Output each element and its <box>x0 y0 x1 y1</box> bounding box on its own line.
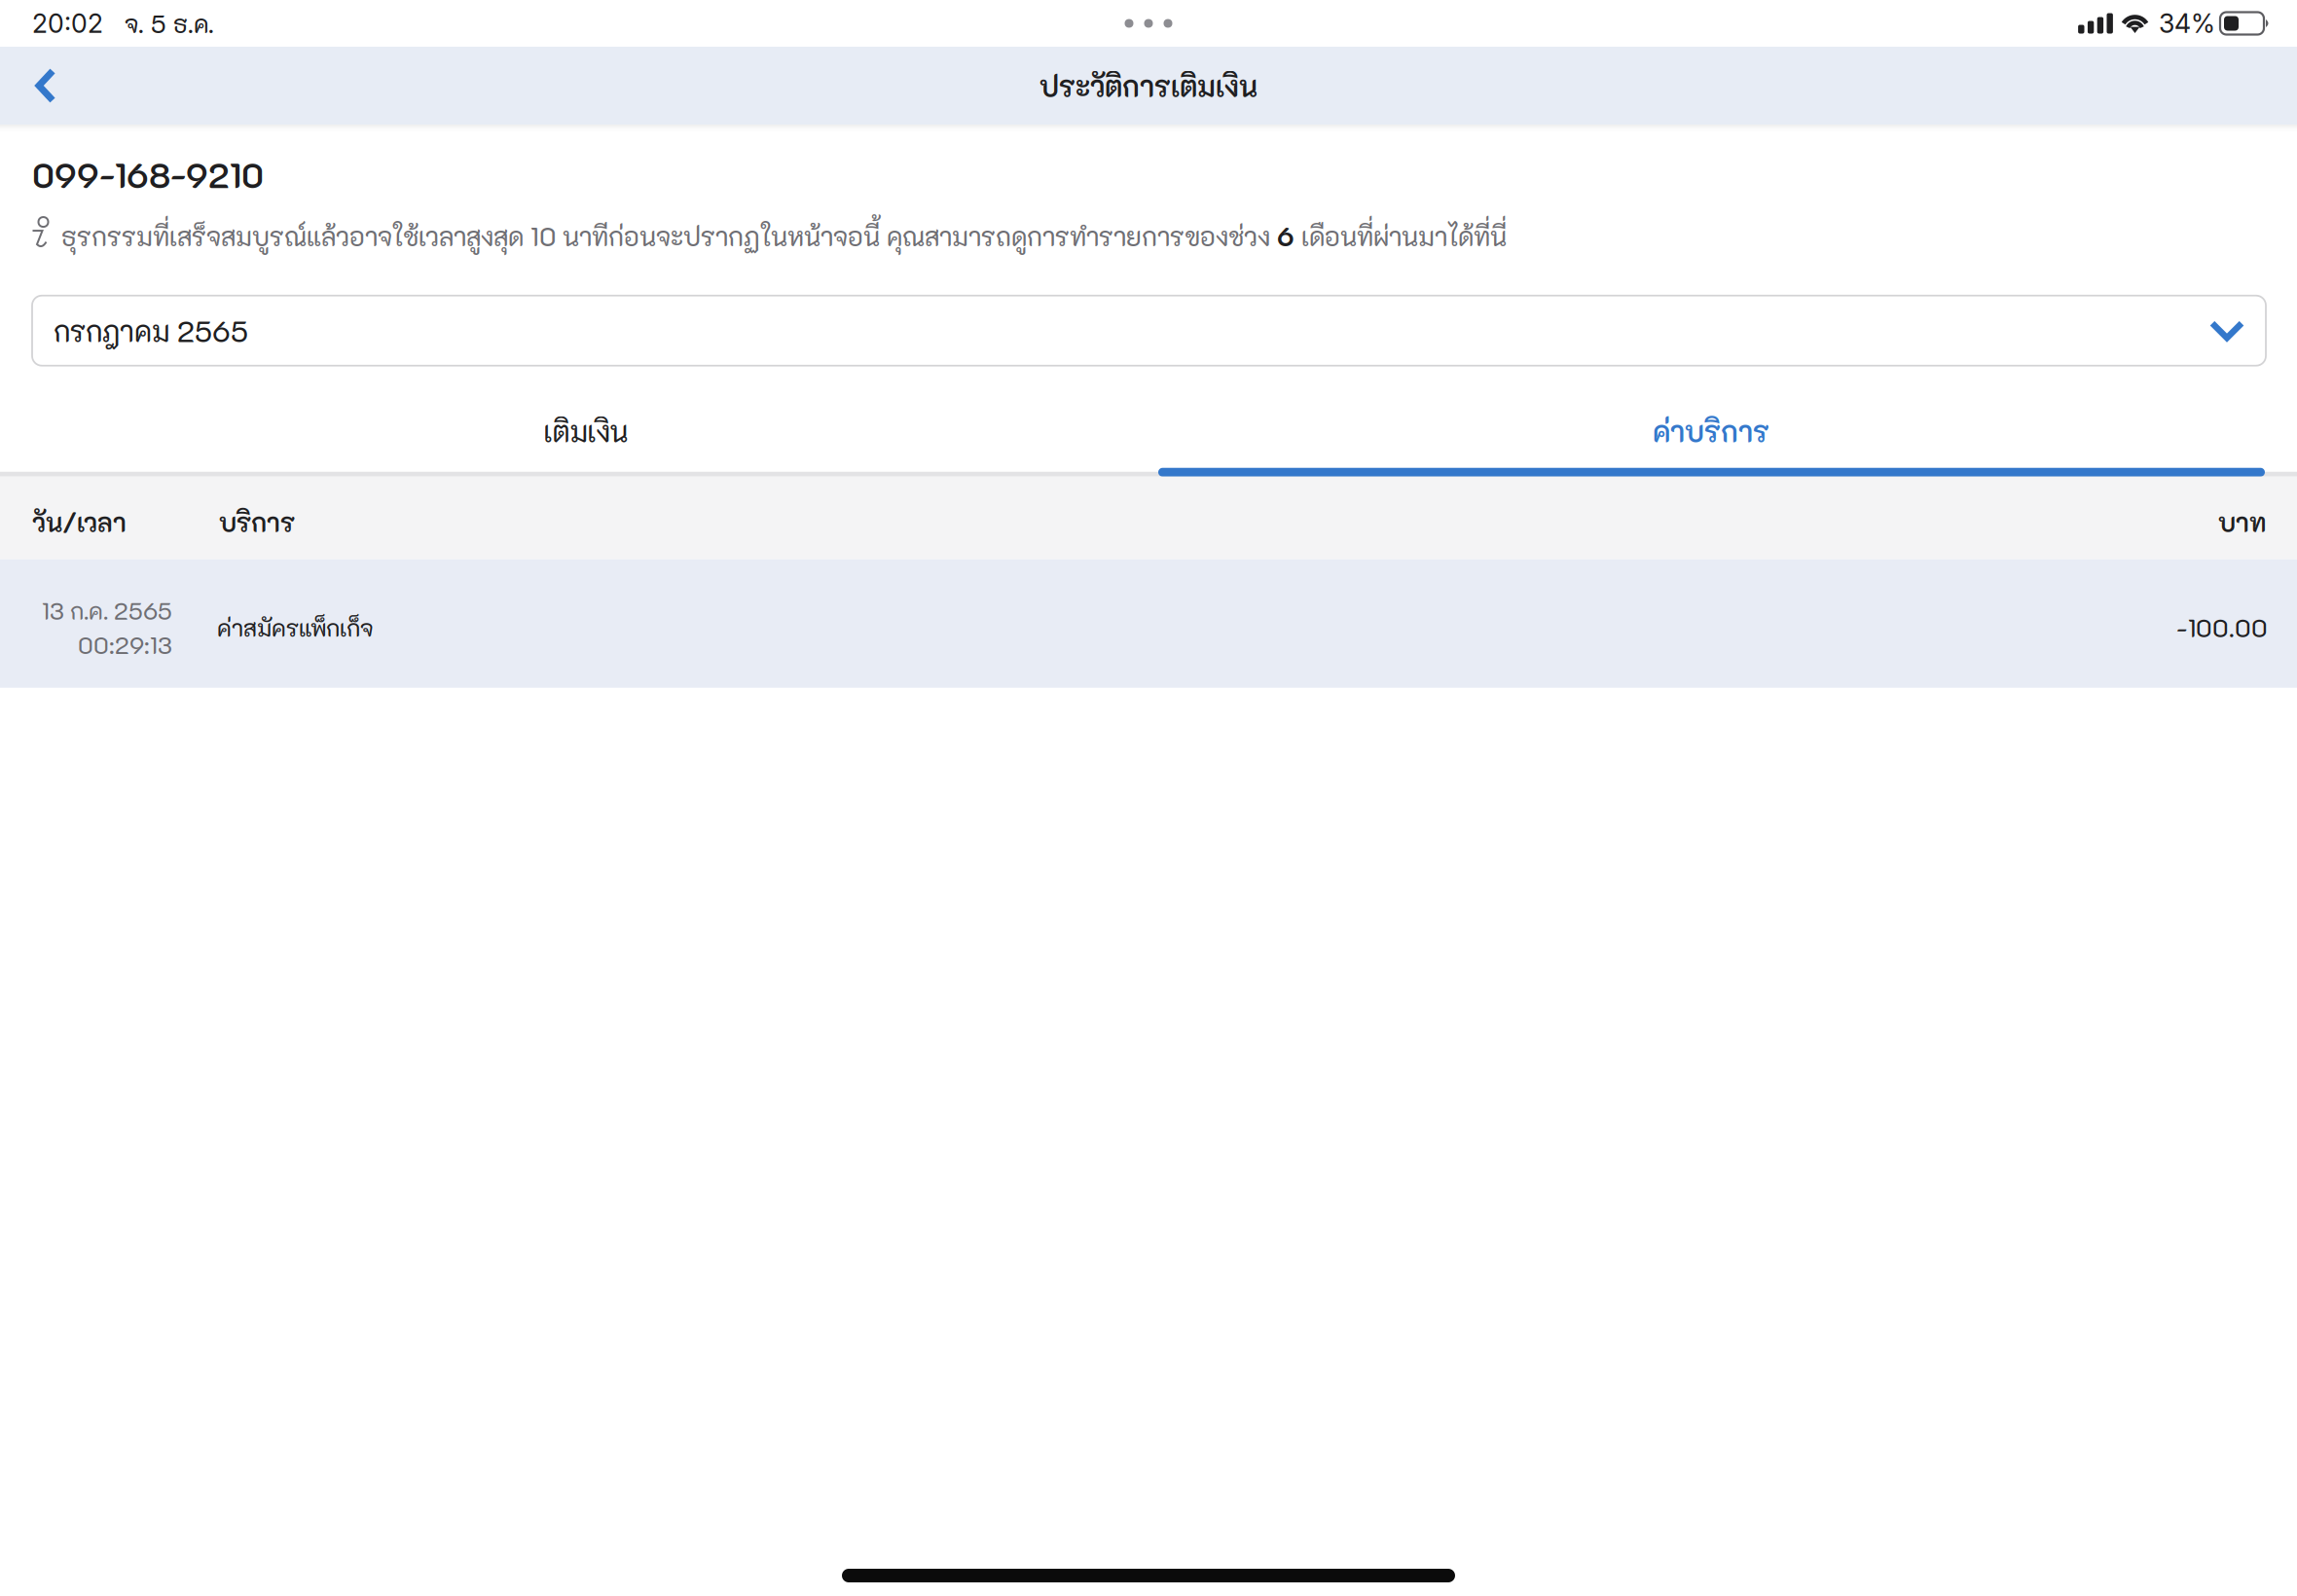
staticText: บาท <box>2218 505 2266 539</box>
staticText: เดือนที่ผ่านมาได้ที่นี่ <box>1294 219 1507 253</box>
staticText: ธุรกรรมที่เสร็จสมบูรณ์แล้วอาจใช้เวลาสูงส… <box>61 219 1277 253</box>
button[interactable]: กรกฎาคม 2565 <box>32 296 2266 366</box>
staticText: จ. 5 ธ.ค. <box>125 7 214 39</box>
staticText: -100.00 <box>2176 611 2268 643</box>
staticText: 20:02 <box>32 8 103 39</box>
button[interactable]: เติมเงิน <box>23 390 1148 472</box>
staticText: บริการ <box>219 505 295 539</box>
staticText: 00:29:13 <box>78 629 172 660</box>
staticText: 13 ก.ค. 2565 <box>42 595 172 625</box>
staticText: วัน/เวลา <box>32 505 127 539</box>
staticText: 34% <box>2159 8 2215 39</box>
staticText: เติมเงิน <box>544 412 628 449</box>
staticText: ค่าสมัครแพ็กเก็จ <box>217 612 373 643</box>
button[interactable]: Back <box>6 47 86 125</box>
staticText: กรกฎาคม 2565 <box>54 312 248 349</box>
staticText: 099-168-9210 <box>32 153 264 197</box>
button[interactable]: ค่าบริการ <box>1148 390 2274 472</box>
staticText: ประวัติการเติมเงิน <box>1039 67 1258 104</box>
staticText: 6 <box>1277 219 1294 253</box>
staticText: ค่าบริการ <box>1653 412 1769 449</box>
